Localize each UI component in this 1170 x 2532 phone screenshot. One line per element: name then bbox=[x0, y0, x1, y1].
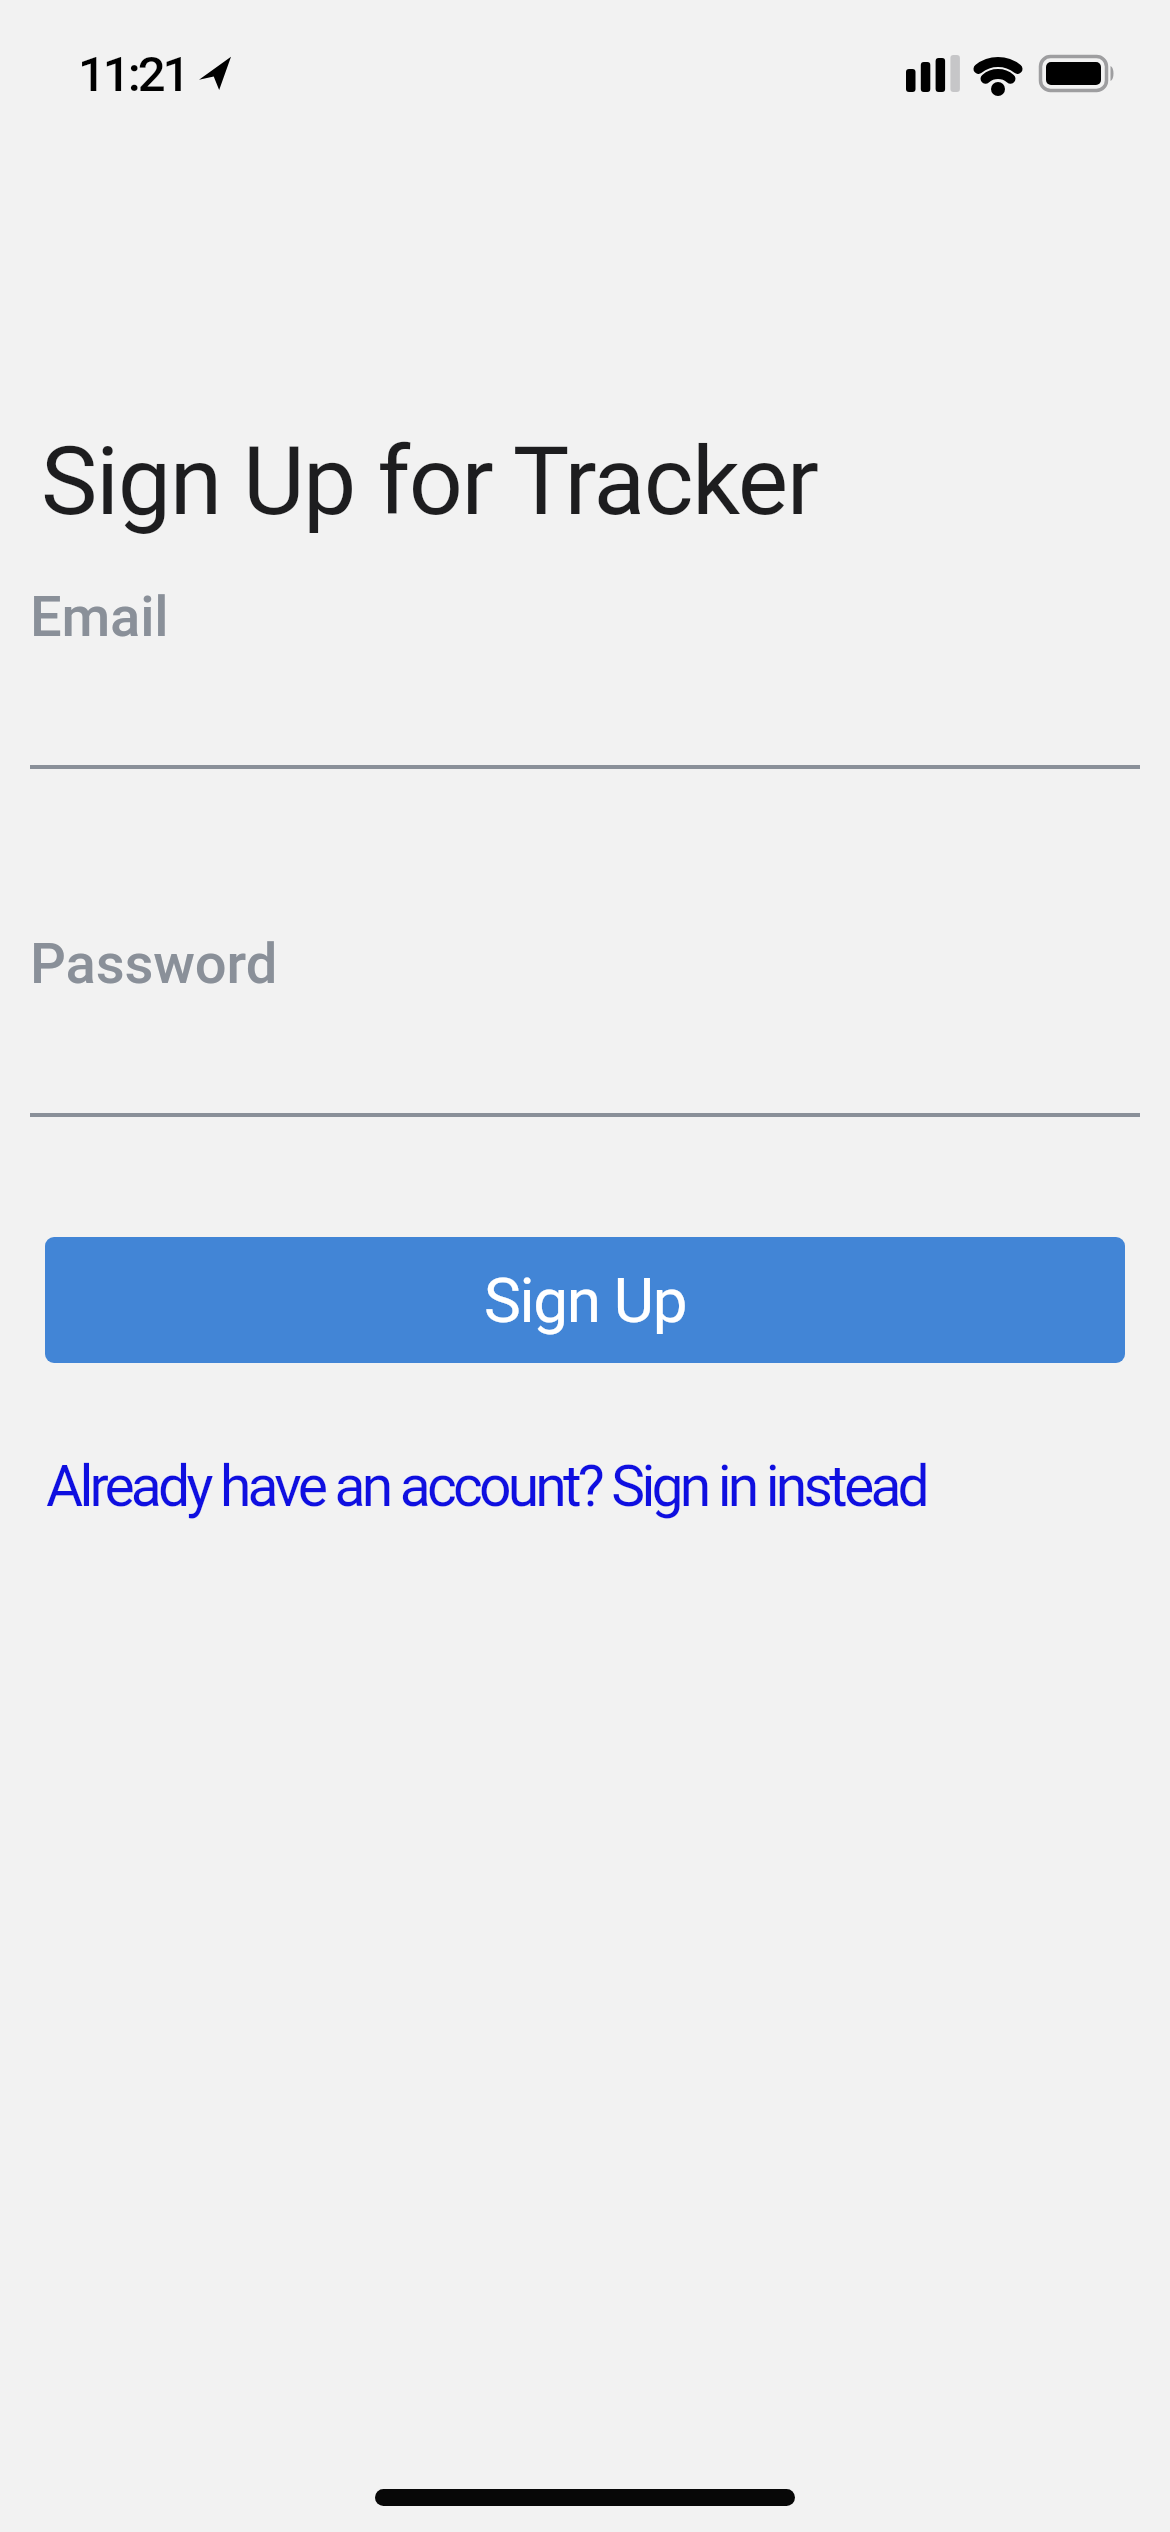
staticText: Password bbox=[30, 931, 278, 997]
staticText: Already have an account? Sign in instead bbox=[46, 1453, 926, 1520]
staticText: Email bbox=[30, 584, 169, 650]
staticText: Sign Up bbox=[484, 1264, 687, 1337]
staticText: 11:21 bbox=[78, 46, 188, 103]
button[interactable]: Sign Up bbox=[45, 1237, 1125, 1363]
button[interactable]: Already have an account? Sign in instead bbox=[46, 1453, 926, 1520]
staticText: Sign Up for Tracker bbox=[41, 426, 818, 537]
